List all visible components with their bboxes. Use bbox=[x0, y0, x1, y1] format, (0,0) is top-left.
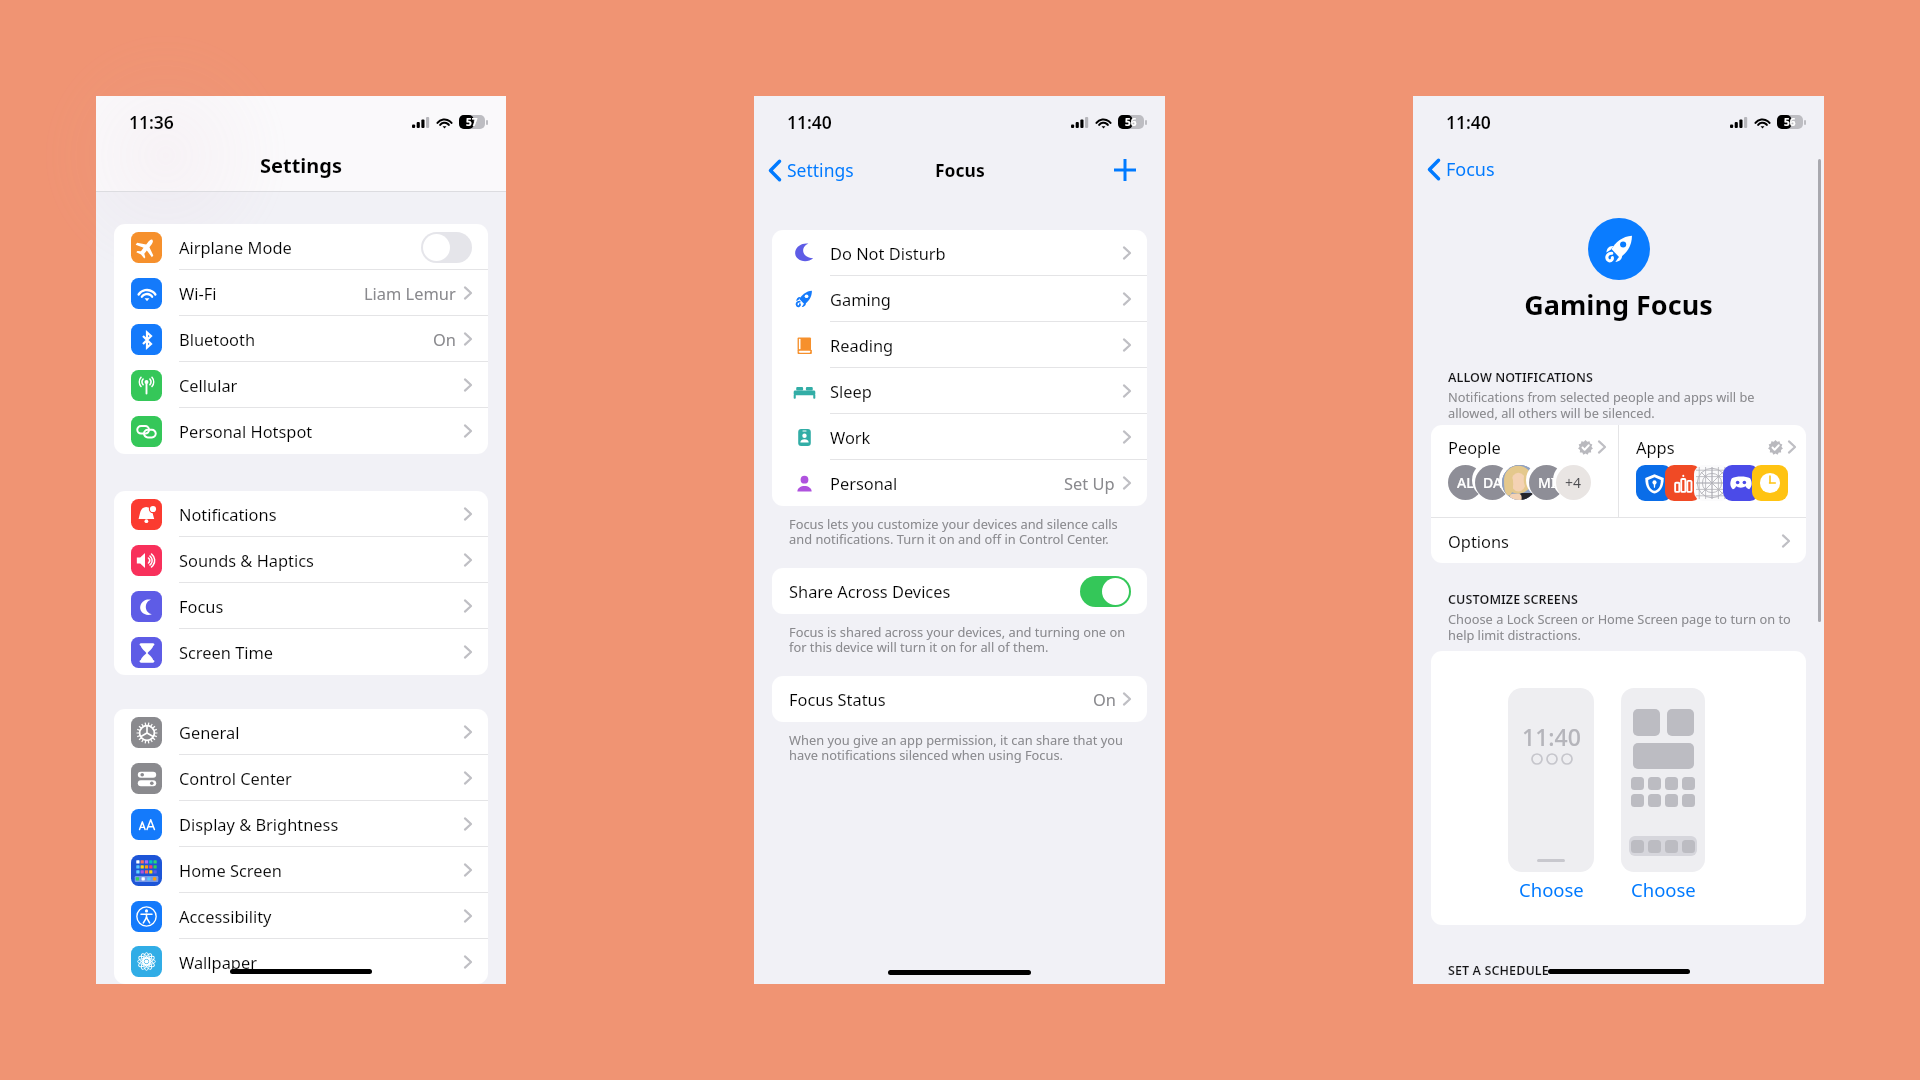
staticText: Focus is shared across your devices, and… bbox=[789, 623, 1126, 656]
button[interactable]: Accessibility bbox=[114, 893, 488, 939]
button[interactable]: Toggle bbox=[421, 232, 472, 263]
staticText: Set Up bbox=[1064, 472, 1115, 494]
staticText: Wi-Fi bbox=[179, 282, 217, 304]
staticText: Settings bbox=[260, 152, 342, 179]
button[interactable]: General bbox=[114, 709, 488, 755]
staticText: Share Across Devices bbox=[789, 580, 951, 602]
staticText: Sleep bbox=[830, 380, 1123, 402]
button[interactable]: Notifications bbox=[114, 491, 488, 537]
staticText: Apps bbox=[1636, 436, 1768, 458]
staticText: Sounds & Haptics bbox=[179, 549, 314, 571]
button[interactable]: Apps bbox=[1619, 425, 1806, 517]
button[interactable]: Focus bbox=[1428, 157, 1495, 182]
button[interactable]: Wallpaper bbox=[114, 939, 488, 984]
staticText: 56 bbox=[1784, 115, 1796, 129]
button[interactable]: Focus Status bbox=[772, 676, 1147, 722]
button[interactable]: Personal bbox=[772, 460, 1147, 506]
staticText: Notifications from selected people and a… bbox=[1448, 388, 1755, 422]
staticText: Focus lets you customize your devices an… bbox=[789, 515, 1118, 548]
button[interactable]: Gaming bbox=[772, 276, 1147, 322]
staticText: Bluetooth bbox=[179, 328, 256, 350]
button[interactable]: Home Screen bbox=[114, 847, 488, 893]
staticText: Reading bbox=[830, 334, 1123, 356]
staticText: ALLOW NOTIFICATIONS bbox=[1448, 369, 1593, 386]
button[interactable]: Sounds & Haptics bbox=[114, 537, 488, 583]
staticText: Work bbox=[830, 426, 1123, 448]
staticText: Settings bbox=[787, 158, 854, 182]
staticText: Options bbox=[1448, 530, 1509, 552]
button[interactable]: Settings bbox=[769, 158, 854, 182]
staticText: Screen Time bbox=[179, 641, 274, 663]
staticText: MI bbox=[1538, 473, 1556, 492]
button[interactable]: Focus bbox=[114, 583, 488, 629]
staticText: Wallpaper bbox=[179, 951, 257, 973]
button[interactable]: Display & Brightness bbox=[114, 801, 488, 847]
staticText: CUSTOMIZE SCREENS bbox=[1448, 591, 1578, 608]
button[interactable]: Choose bbox=[1631, 877, 1696, 902]
staticText: Do Not Disturb bbox=[830, 242, 1123, 264]
button[interactable]: Bluetooth bbox=[114, 316, 488, 362]
staticText: Cellular bbox=[179, 374, 238, 396]
staticText: Gaming bbox=[830, 288, 1123, 310]
staticText: 56 bbox=[1125, 115, 1137, 129]
button[interactable]: Choose bbox=[1519, 877, 1584, 902]
staticText: Choose bbox=[1631, 877, 1696, 902]
button[interactable]: Control Center bbox=[114, 755, 488, 801]
staticText: Home Screen bbox=[179, 859, 282, 881]
button[interactable]: Share Across Devices bbox=[772, 568, 1147, 614]
staticText: Focus bbox=[935, 158, 985, 182]
staticText: 57 bbox=[466, 115, 478, 129]
staticText: AL bbox=[1457, 473, 1474, 492]
button[interactable]: Options bbox=[1431, 518, 1806, 563]
staticText: On bbox=[1093, 688, 1116, 710]
staticText: Liam Lemur bbox=[364, 282, 456, 304]
staticText: 11:40 bbox=[787, 110, 832, 134]
staticText: When you give an app permission, it can … bbox=[789, 731, 1123, 764]
staticText: DA bbox=[1483, 473, 1503, 492]
staticText: On bbox=[433, 328, 456, 350]
staticText: Personal bbox=[830, 472, 1064, 494]
staticText: Focus bbox=[1446, 157, 1495, 182]
staticText: Personal Hotspot bbox=[179, 420, 313, 442]
staticText: Accessibility bbox=[179, 905, 272, 927]
staticText: Display & Brightness bbox=[179, 813, 339, 835]
staticText: SET A SCHEDULE bbox=[1448, 962, 1549, 979]
staticText: Choose a Lock Screen or Home Screen page… bbox=[1448, 610, 1791, 644]
button[interactable]: Screen Time bbox=[114, 629, 488, 675]
button[interactable]: Airplane Mode bbox=[114, 224, 488, 270]
staticText: Airplane Mode bbox=[179, 236, 292, 258]
button[interactable]: Add Focus bbox=[1108, 153, 1142, 187]
staticText: Gaming Focus bbox=[1413, 286, 1824, 323]
button[interactable]: Wi-Fi bbox=[114, 270, 488, 316]
button[interactable]: People bbox=[1431, 425, 1618, 517]
staticText: People bbox=[1448, 436, 1578, 458]
staticText: +4 bbox=[1565, 473, 1582, 492]
button[interactable]: Do Not Disturb bbox=[772, 230, 1147, 276]
staticText: 11:40 bbox=[1446, 110, 1491, 134]
staticText: General bbox=[179, 721, 240, 743]
button[interactable]: Reading bbox=[772, 322, 1147, 368]
staticText: Focus Status bbox=[789, 688, 886, 710]
staticText: Choose bbox=[1519, 877, 1584, 902]
button[interactable]: Cellular bbox=[114, 362, 488, 408]
button[interactable]: Work bbox=[772, 414, 1147, 460]
button[interactable]: Sleep bbox=[772, 368, 1147, 414]
staticText: 11:36 bbox=[129, 110, 174, 134]
button[interactable]: Toggle bbox=[1080, 576, 1131, 607]
button[interactable]: Personal Hotspot bbox=[114, 408, 488, 454]
staticText: 11:40 bbox=[1522, 721, 1581, 752]
staticText: Control Center bbox=[179, 767, 292, 789]
staticText: Notifications bbox=[179, 503, 277, 525]
staticText: Focus bbox=[179, 595, 224, 617]
